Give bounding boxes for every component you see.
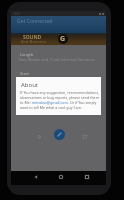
staticText: SOUND bbox=[23, 34, 42, 41]
button[interactable]: Get Connected bbox=[11, 16, 106, 33]
staticText: 9:41 bbox=[14, 12, 20, 16]
staticText: mitrakov@gmail.com bbox=[32, 100, 68, 105]
button[interactable]: SOUND bbox=[11, 33, 106, 45]
staticText: . Or if You simply bbox=[68, 100, 97, 105]
staticText: And Business bbox=[21, 39, 47, 44]
staticText: G bbox=[60, 34, 66, 44]
button[interactable]: Compose bbox=[54, 129, 65, 140]
staticText: observations or bug reports, please send… bbox=[20, 95, 100, 100]
button[interactable]: Back bbox=[31, 172, 41, 182]
staticText: About bbox=[21, 81, 39, 89]
button[interactable]: Home bbox=[56, 172, 66, 182]
staticText: Start bbox=[20, 71, 29, 76]
staticText: 9 bbox=[38, 134, 41, 141]
staticText: to Me: bbox=[20, 100, 32, 105]
staticText: 27 bbox=[82, 134, 88, 141]
staticText: If You have any suggestion, recommendati… bbox=[20, 90, 100, 95]
staticText: want to tell Me what a cool guy I am. bbox=[20, 105, 82, 110]
button[interactable]: Recent apps bbox=[82, 172, 92, 182]
staticText: Two, Weeks and, Final Informal Sentence bbox=[18, 57, 95, 62]
staticText: Length bbox=[20, 52, 34, 57]
staticText: Get Connected bbox=[17, 18, 53, 25]
